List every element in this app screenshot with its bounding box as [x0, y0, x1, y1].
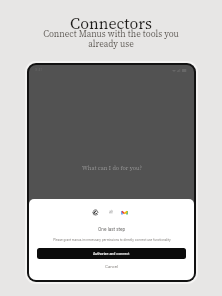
staticText: Please grant manus.im necessary permissi…	[53, 238, 171, 242]
other: Connect	[109, 210, 113, 214]
staticText: Connect Manus with the tools you already…	[41, 28, 181, 50]
staticText: One last step	[98, 227, 126, 232]
staticText: Cancel	[105, 264, 119, 269]
staticText: Connectors	[70, 12, 152, 34]
staticText: Authorize and connect	[93, 252, 130, 256]
staticText: 9:41	[35, 68, 42, 72]
staticText: What can I do for you?	[82, 164, 142, 172]
button[interactable]: Cancel	[99, 263, 125, 270]
button[interactable]: Authorize and connect	[37, 248, 186, 259]
